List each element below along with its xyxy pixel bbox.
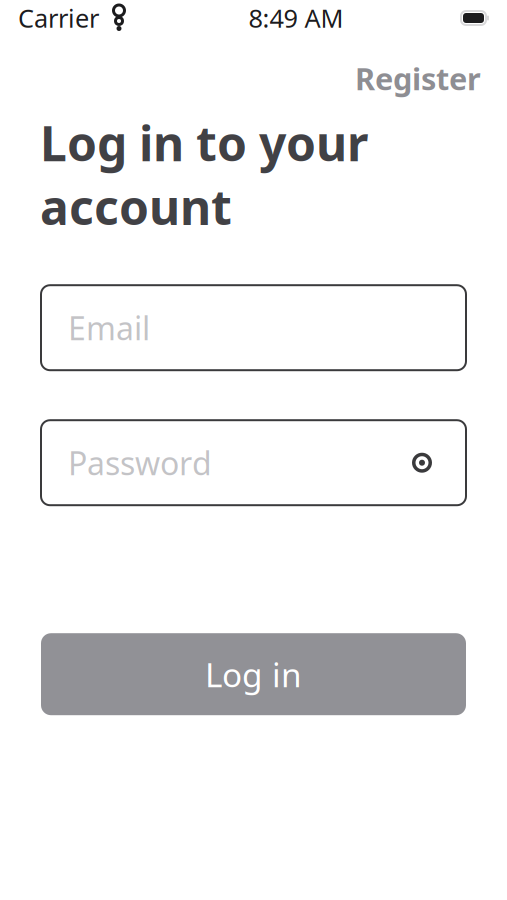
staticText: Log in <box>205 652 302 696</box>
staticText: Email <box>68 306 150 349</box>
staticText: Password <box>68 441 212 484</box>
staticText: Carrier <box>18 1 99 35</box>
button[interactable]: Log in <box>41 633 466 715</box>
button[interactable]: Show password <box>405 451 439 475</box>
staticText: Log in to your account <box>40 111 368 238</box>
button[interactable]: Register <box>355 58 481 99</box>
staticText: 8:49 AM <box>248 1 343 35</box>
staticText: Register <box>355 58 481 99</box>
